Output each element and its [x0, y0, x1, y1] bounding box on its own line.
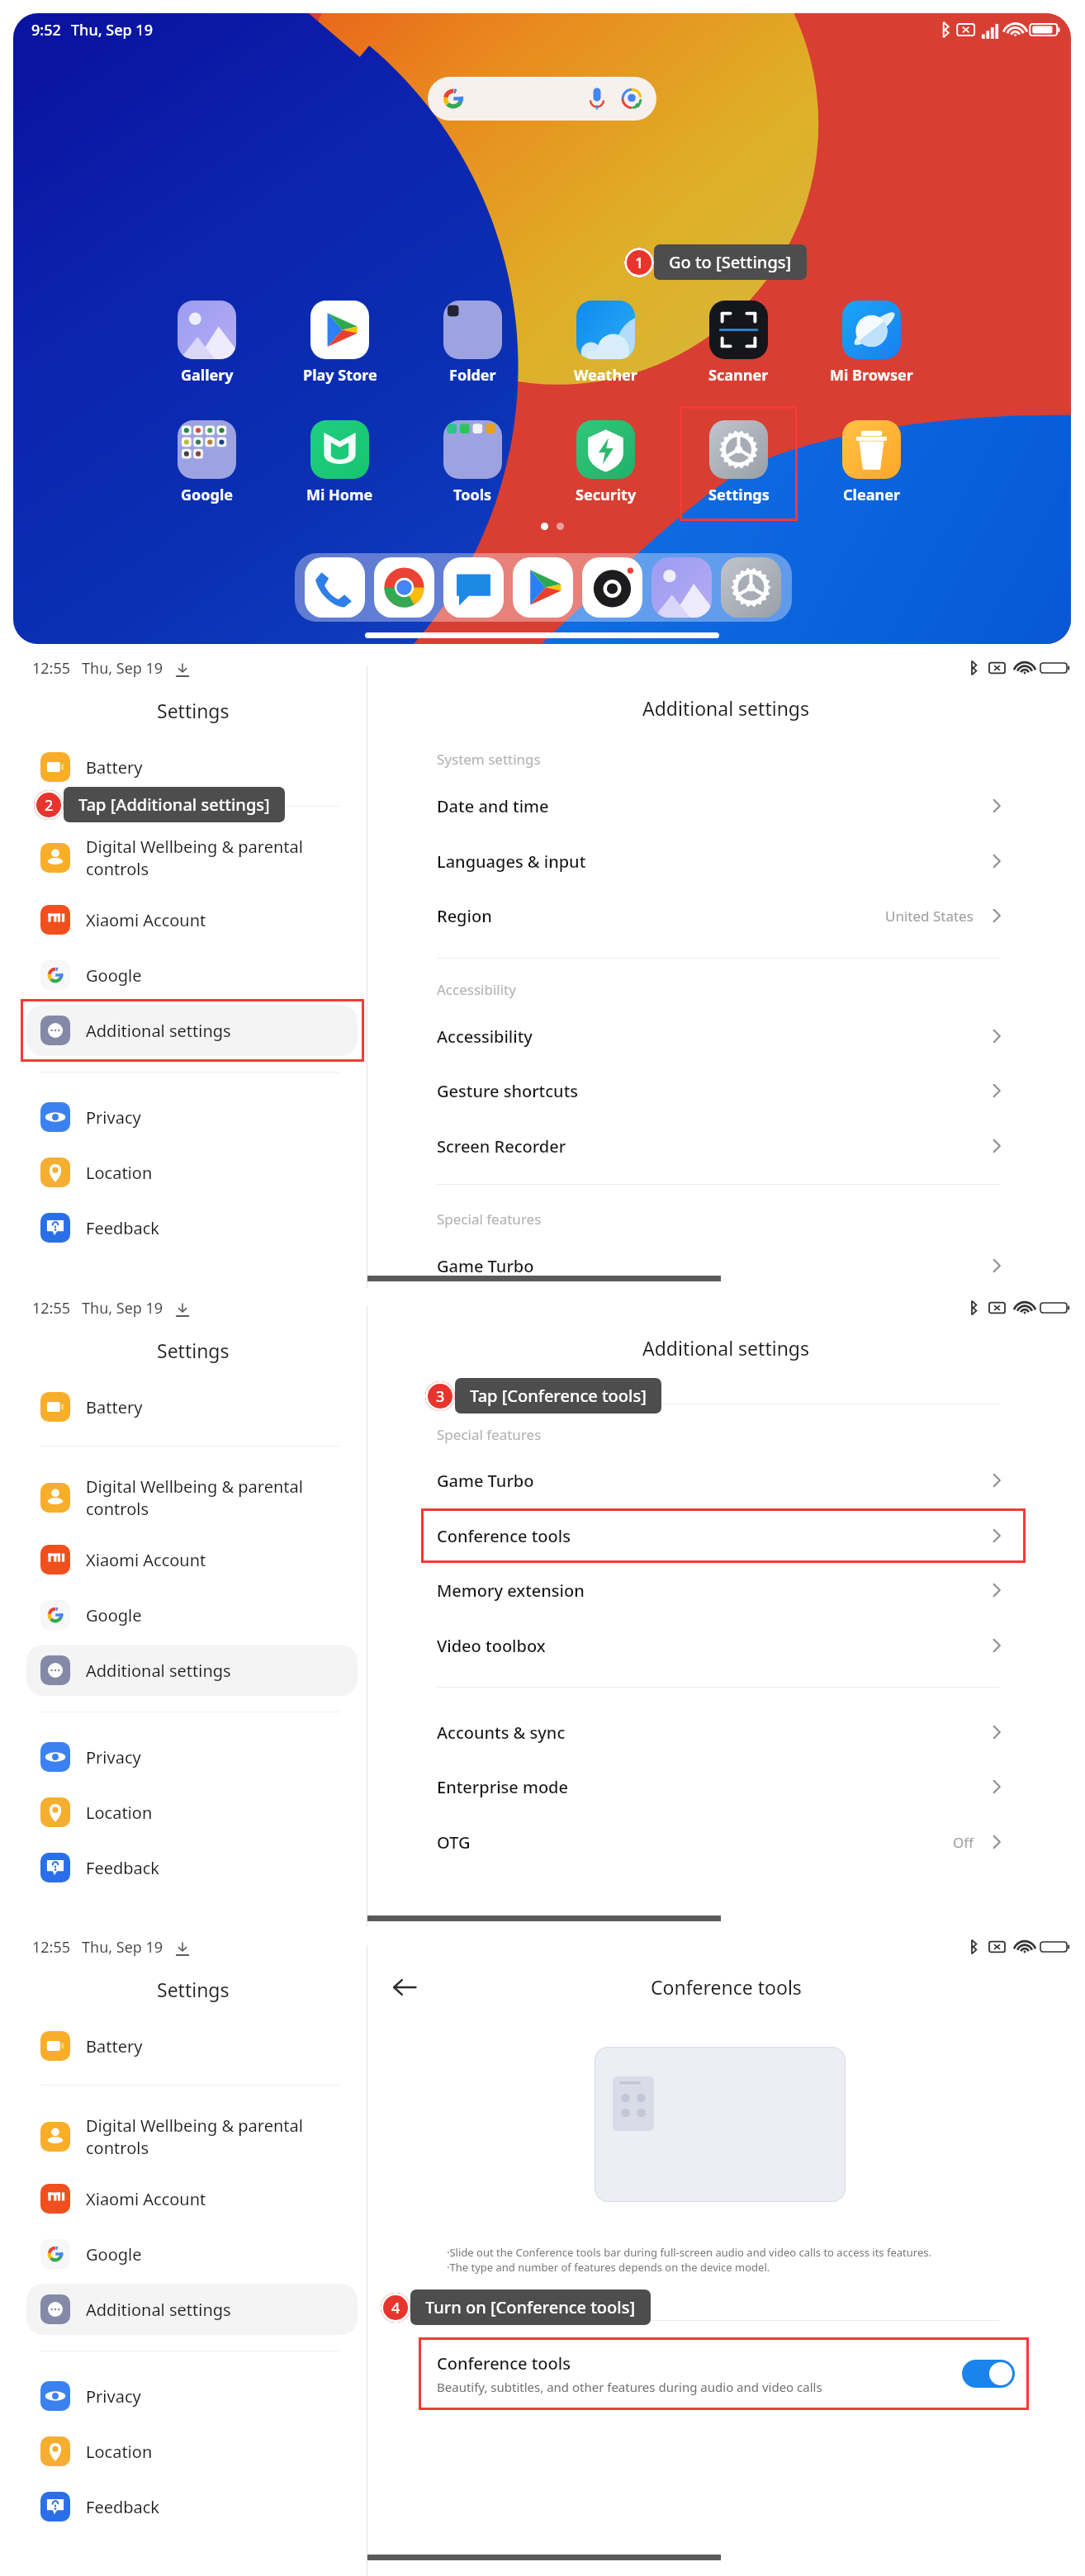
staticText: Video toolbox [437, 1635, 546, 1657]
button[interactable]: Conference tools [437, 2340, 1015, 2408]
button[interactable]: Additional settings [26, 2284, 358, 2335]
button[interactable]: Scanner [684, 301, 794, 386]
button[interactable]: Feedback [26, 1202, 358, 1253]
staticText: Digital Wellbeing & parental controls [86, 2114, 303, 2159]
button[interactable]: Mi Browser [817, 301, 926, 386]
button[interactable]: Languages & input [437, 836, 1007, 886]
button[interactable]: Google [26, 2228, 358, 2280]
button[interactable]: Play [513, 557, 573, 618]
button[interactable]: Mi Home [285, 420, 395, 505]
button[interactable]: Location [26, 1787, 358, 1838]
staticText: 3 [436, 1386, 445, 1407]
button[interactable]: Screen Recorder [437, 1121, 1007, 1171]
button[interactable]: Security [551, 420, 661, 505]
button[interactable]: OTG [437, 1817, 1007, 1867]
button[interactable]: Location [26, 1147, 358, 1198]
button[interactable]: Google [26, 1589, 358, 1641]
button[interactable]: Camera [582, 557, 642, 618]
button[interactable]: Conference tools toggle [962, 2360, 1015, 2388]
button[interactable]: Privacy [26, 2370, 358, 2422]
button[interactable]: Google search [428, 77, 656, 121]
button[interactable]: Settings [721, 557, 781, 618]
button[interactable]: Phone [305, 557, 365, 618]
button[interactable]: Additional settings [26, 1005, 358, 1056]
button[interactable]: Tools [418, 420, 528, 505]
button[interactable]: Game Turbo [437, 1456, 1007, 1505]
staticText: Xiaomi Account [86, 909, 206, 931]
button[interactable]: Enterprise mode [437, 1762, 1007, 1811]
staticText: Digital Wellbeing & parental controls [86, 1475, 303, 1520]
staticText: Mi Browser [830, 365, 913, 386]
button[interactable]: Messages [443, 557, 504, 618]
staticText: Date and time [437, 795, 549, 817]
staticText: Memory extension [437, 1579, 585, 1602]
button[interactable]: Chrome [374, 557, 434, 618]
staticText: Special features [437, 1210, 542, 1229]
button[interactable]: Digital Wellbeing & parental controls [26, 832, 358, 883]
button[interactable]: Feedback [26, 1842, 358, 1893]
staticText: Thu, Sep 19 [71, 20, 153, 40]
button[interactable]: Weather [551, 301, 661, 386]
button[interactable]: Battery [26, 1381, 358, 1432]
button[interactable]: Accounts & sync [437, 1707, 1007, 1757]
button[interactable]: Play Store [285, 301, 395, 386]
button[interactable]: Xiaomi Account [26, 894, 358, 945]
staticText: Settings [708, 485, 770, 505]
staticText: 12:55 [32, 1298, 71, 1319]
button[interactable]: Accessibility [437, 1011, 1007, 1061]
button[interactable]: Game Turbo [437, 1241, 1007, 1290]
button[interactable]: Additional settings [26, 1645, 358, 1696]
button[interactable]: Feedback [26, 2481, 358, 2532]
staticText: Thu, Sep 19 [82, 1298, 163, 1319]
staticText: Additional settings [86, 2299, 231, 2321]
button[interactable]: Privacy [26, 1731, 358, 1783]
staticText: Conference tools [437, 2352, 571, 2375]
button[interactable]: Xiaomi Account [26, 1534, 358, 1585]
staticText: Additional settings [642, 695, 810, 721]
button[interactable]: Gallery [651, 557, 712, 618]
button[interactable]: Back [386, 1968, 424, 2006]
staticText: Privacy [86, 2385, 141, 2408]
button[interactable]: Settings [684, 420, 794, 505]
staticText: Special features [437, 1425, 542, 1444]
staticText: Go to [Settings] [669, 251, 792, 273]
button[interactable]: Region [437, 891, 1007, 940]
button[interactable]: Battery [26, 2020, 358, 2072]
button[interactable]: Xiaomi Account [26, 2173, 358, 2224]
staticText: 12:55 [32, 658, 71, 679]
staticText: Google [181, 485, 234, 505]
staticText: Region [437, 905, 492, 927]
staticText: Google [86, 964, 142, 987]
staticText: Feedback [86, 2496, 160, 2518]
button[interactable]: Digital Wellbeing & parental controls [26, 1472, 358, 1523]
button[interactable]: Google [26, 949, 358, 1001]
staticText: United States [885, 907, 974, 926]
staticText: Accessibility [437, 1025, 533, 1048]
button[interactable]: Battery [26, 741, 358, 793]
button[interactable]: Digital Wellbeing & parental controls [26, 2111, 358, 2162]
staticText: Enterprise mode [437, 1776, 568, 1798]
button[interactable]: Google [152, 420, 262, 505]
staticText: Gesture shortcuts [437, 1080, 579, 1102]
staticText: Settings [157, 698, 230, 723]
button[interactable]: Folder [418, 301, 528, 386]
button[interactable]: Memory extension [437, 1565, 1007, 1615]
staticText: Feedback [86, 1857, 160, 1879]
staticText: Scanner [708, 365, 769, 386]
button[interactable]: Video toolbox [437, 1621, 1007, 1670]
staticText: 2 [45, 795, 54, 816]
button[interactable]: Cleaner [817, 420, 926, 505]
staticText: Tap [Additional settings] [78, 793, 270, 816]
staticText: Additional settings [86, 1660, 231, 1682]
staticText: System settings [437, 750, 541, 769]
button[interactable]: Conference tools [437, 1511, 1007, 1560]
staticText: Screen Recorder [437, 1135, 566, 1158]
button[interactable]: Privacy [26, 1091, 358, 1143]
button[interactable]: Date and time [437, 781, 1007, 831]
staticText: Thu, Sep 19 [82, 1937, 163, 1958]
button[interactable]: Gesture shortcuts [437, 1066, 1007, 1115]
button[interactable]: Location [26, 2426, 358, 2477]
button[interactable]: Gallery [152, 301, 262, 386]
staticText: Security [576, 485, 637, 505]
staticText: Xiaomi Account [86, 1549, 206, 1571]
